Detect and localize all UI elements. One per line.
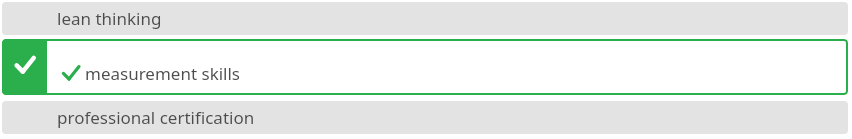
staticText: measurement skills: [85, 62, 241, 85]
staticText: professional certification: [57, 106, 255, 129]
button[interactable]: professional certification: [2, 101, 848, 134]
button[interactable]: lean thinking: [2, 2, 848, 35]
button[interactable]: Selected: [2, 39, 47, 95]
staticText: lean thinking: [57, 7, 162, 30]
button[interactable]: Selected: [2, 39, 848, 95]
